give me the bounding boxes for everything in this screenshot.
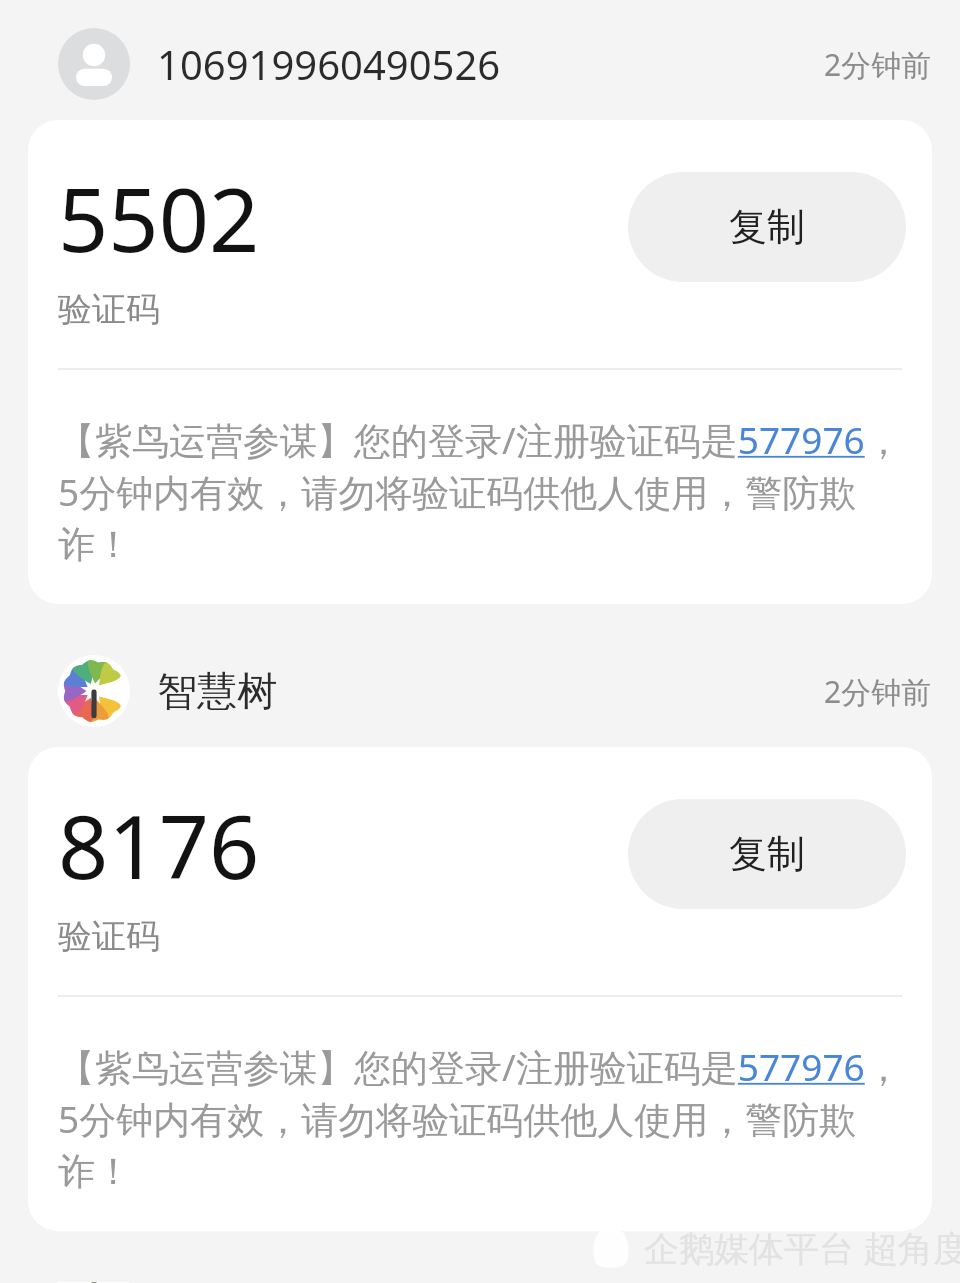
staticText: 【紫鸟运营参谋】您的登录/注册验证码是577976，5分钟内有效，请勿将验证码供…	[58, 1041, 902, 1195]
button[interactable]: 8176	[28, 747, 932, 1231]
staticText: 8176	[58, 785, 260, 905]
staticText: 2分钟前	[824, 671, 932, 712]
staticText: 5502	[58, 158, 260, 278]
staticText: 企鹅媒体平台 超角度	[644, 1224, 960, 1272]
button[interactable]: 智慧树	[0, 655, 960, 727]
staticText: 2分钟前	[824, 44, 932, 85]
staticText: 复制	[729, 203, 805, 251]
staticText: 验证码	[58, 288, 160, 331]
staticText: 复制	[729, 830, 805, 878]
button[interactable]: 复制	[628, 172, 906, 282]
button[interactable]: 106919960490526	[0, 28, 960, 100]
button[interactable]: 复制	[628, 799, 906, 909]
staticText: 106919960490526	[157, 37, 501, 91]
staticText: 智慧树	[157, 666, 277, 716]
staticText: 验证码	[58, 915, 160, 958]
staticText: 【紫鸟运营参谋】您的登录/注册验证码是577976，5分钟内有效，请勿将验证码供…	[58, 414, 902, 568]
button[interactable]: 5502	[28, 120, 932, 604]
button[interactable]: 智慧树	[0, 1282, 960, 1283]
